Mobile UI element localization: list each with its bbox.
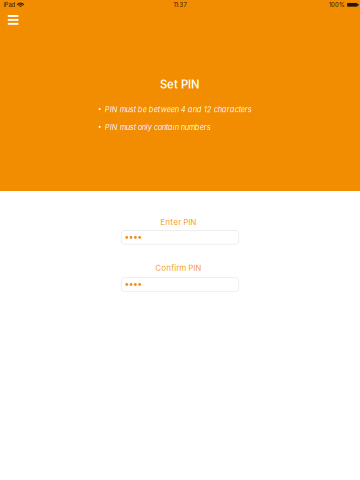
staticText: iPad bbox=[4, 1, 16, 8]
staticText: PIN must only contain numbers bbox=[105, 123, 211, 132]
staticText: 100% bbox=[329, 1, 345, 8]
button[interactable]: Enter PIN bbox=[121, 230, 239, 244]
staticText: Enter PIN bbox=[160, 217, 196, 227]
button[interactable]: Menu bbox=[0, 0, 26, 31]
staticText: PIN must be between 4 and 12 characters bbox=[105, 105, 252, 114]
staticText: Set PIN bbox=[160, 78, 200, 91]
staticText: 11:37 bbox=[173, 1, 186, 8]
button[interactable]: Confirm PIN bbox=[121, 278, 239, 291]
staticText: Confirm PIN bbox=[155, 263, 201, 273]
